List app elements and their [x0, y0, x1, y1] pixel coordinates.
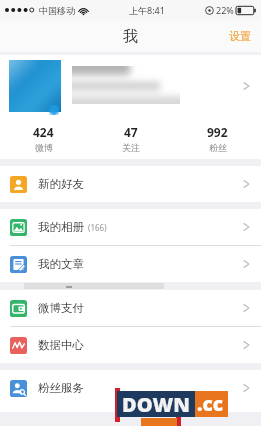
button[interactable]: 设置 [219, 23, 261, 49]
button[interactable]: 数据中心 [0, 327, 261, 363]
button[interactable]: 粉丝服务 [0, 370, 261, 406]
staticText: 粉丝服务 [38, 381, 84, 395]
staticText: 数据中心 [38, 338, 84, 352]
staticText: 设置 [229, 29, 251, 43]
staticText: 我 [123, 27, 138, 46]
staticText: 我的文章 [38, 257, 84, 271]
button[interactable]: 992 [174, 117, 261, 159]
staticText: 中国移动 [39, 5, 75, 16]
button[interactable]: 47 [87, 117, 174, 159]
button[interactable]: 新的好友 [0, 166, 261, 202]
staticText: 424 [33, 124, 54, 140]
button[interactable]: 我的文章 [0, 246, 261, 282]
staticText: 22% [216, 4, 234, 16]
staticText: 微博支付 [38, 301, 84, 315]
staticText: (166) [88, 222, 107, 233]
staticText: 粉丝 [209, 142, 227, 153]
staticText: 新的好友 [38, 177, 84, 191]
button[interactable]: 我的相册 [0, 209, 261, 245]
button[interactable]: 微博支付 [0, 290, 261, 326]
staticText: 上午8:41 [129, 4, 165, 16]
staticText: 992 [207, 124, 228, 140]
staticText: 47 [124, 124, 138, 140]
staticText: 关注 [122, 142, 140, 153]
staticText: .cc [197, 391, 223, 417]
staticText: 我的相册 [38, 220, 84, 234]
staticText: DOWN [122, 391, 190, 417]
button[interactable]: 424 [0, 117, 87, 159]
button[interactable] [0, 55, 261, 117]
staticText: 微博 [35, 142, 53, 153]
